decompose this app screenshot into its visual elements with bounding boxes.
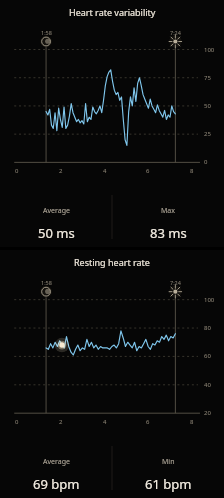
button[interactable]: Heart rate variability [0,0,224,247]
button[interactable]: Average [0,194,112,247]
staticText: Min [162,457,175,467]
staticText: 1:58 [41,29,52,36]
staticText: Max [161,206,175,216]
staticText: 80 [204,324,211,332]
button[interactable]: Resting heart rate [0,250,224,498]
staticText: Heart rate variability [69,6,156,18]
button[interactable]: Max [112,194,224,247]
staticText: 25 [204,130,211,138]
staticText: 100 [204,46,215,54]
staticText: Average [43,457,70,467]
staticText: 4 [103,167,107,175]
button[interactable]: Average [0,445,112,498]
staticText: 4 [103,418,107,426]
staticText: 100 [204,296,215,304]
staticText: 2 [59,167,63,175]
staticText: 60 [204,352,211,360]
staticText: 69 bpm [33,475,80,493]
staticText: 7:24 [170,29,181,36]
staticText: 2 [59,418,63,426]
staticText: 1:58 [41,279,52,286]
button[interactable]: Min [112,445,224,498]
staticText: 83 ms [150,224,187,242]
staticText: Resting heart rate [74,256,150,268]
staticText: 8 [190,167,194,175]
staticText: 8 [190,418,194,426]
staticText: 61 bpm [145,475,192,493]
staticText: 75 [204,74,211,82]
staticText: 6 [146,418,150,426]
staticText: 7:24 [170,279,181,286]
staticText: 0 [204,158,208,166]
staticText: Average [43,206,70,216]
staticText: 0 [15,418,19,426]
staticText: 0 [15,167,19,175]
staticText: 20 [204,409,211,417]
staticText: 50 ms [38,224,75,242]
staticText: 40 [204,381,211,389]
staticText: 50 [204,102,211,110]
staticText: 6 [146,167,150,175]
